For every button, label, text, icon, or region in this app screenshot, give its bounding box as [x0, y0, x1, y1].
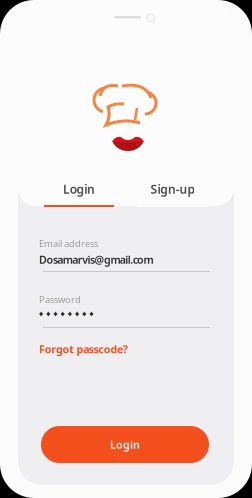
staticText: Login [110, 437, 140, 452]
button[interactable]: Sign-up [119, 181, 227, 207]
staticText: Sign-up [151, 181, 195, 197]
staticText: Dosamarvis@gmail.com [39, 252, 154, 267]
staticText: Email address [39, 237, 98, 250]
button[interactable]: Forgot passcode? [39, 343, 128, 355]
button[interactable]: Login [41, 426, 209, 463]
staticText: Forgot passcode? [39, 342, 128, 356]
staticText: Login [63, 181, 95, 197]
button[interactable]: Login [25, 181, 133, 207]
staticText: Password [39, 293, 81, 306]
